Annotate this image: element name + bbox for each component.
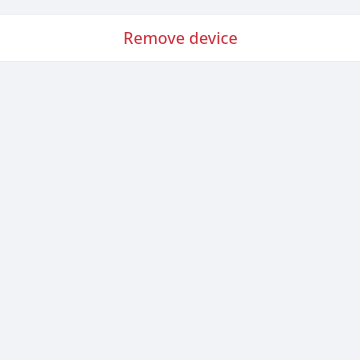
staticText: Remove device (123, 27, 238, 49)
button[interactable]: Remove device (0, 15, 360, 61)
